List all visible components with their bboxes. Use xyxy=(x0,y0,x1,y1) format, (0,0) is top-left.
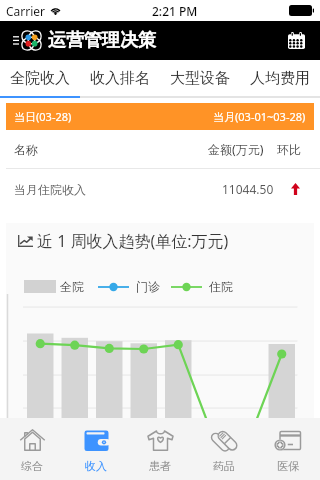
button[interactable]: 收入 xyxy=(64,418,128,480)
staticText: 2:21 PM xyxy=(152,3,198,19)
button[interactable]: 综合 xyxy=(0,418,64,480)
staticText: 大型设备 xyxy=(170,69,230,88)
button[interactable]: 全院收入 xyxy=(0,60,80,96)
button[interactable]: 当月(03-01~03-28) xyxy=(160,103,314,130)
staticText: 当月住院收入 xyxy=(14,182,86,197)
staticText: 当日(03-28) xyxy=(14,109,72,124)
staticText: 医保 xyxy=(277,459,299,473)
staticText: 住院 xyxy=(209,279,233,294)
button[interactable]: 人均费用 xyxy=(240,60,320,96)
button[interactable]: Calendar xyxy=(285,29,308,52)
button[interactable]: 大型设备 xyxy=(160,60,240,96)
staticText: 综合 xyxy=(21,459,43,473)
staticText: 运营管理决策 xyxy=(48,29,156,52)
staticText: 收入排名 xyxy=(90,69,150,88)
staticText: 全院 xyxy=(60,279,84,294)
staticText: 门诊 xyxy=(136,279,160,294)
button[interactable]: 收入排名 xyxy=(80,60,160,96)
staticText: 11044.50 xyxy=(222,181,274,197)
staticText: 人均费用 xyxy=(250,69,310,88)
staticText: 药品 xyxy=(213,459,235,473)
staticText: 患者 xyxy=(149,459,171,473)
button[interactable]: Menu xyxy=(0,21,47,60)
staticText: 名称 xyxy=(14,142,38,157)
staticText: 当月(03-01~03-28) xyxy=(213,109,306,124)
button[interactable]: 医保 xyxy=(256,418,320,480)
staticText: 金额(万元) xyxy=(208,141,264,157)
staticText: 环比 xyxy=(277,142,301,157)
button[interactable]: 药品 xyxy=(192,418,256,480)
staticText: 全院收入 xyxy=(10,69,70,88)
button[interactable]: 当日(03-28) xyxy=(6,103,160,130)
staticText: 近 1 周收入趋势(单位:万元) xyxy=(37,230,229,252)
button[interactable]: 患者 xyxy=(128,418,192,480)
staticText: 收入 xyxy=(85,459,107,473)
button[interactable]: 当月住院收入 xyxy=(0,169,320,209)
staticText: Carrier xyxy=(6,3,46,19)
